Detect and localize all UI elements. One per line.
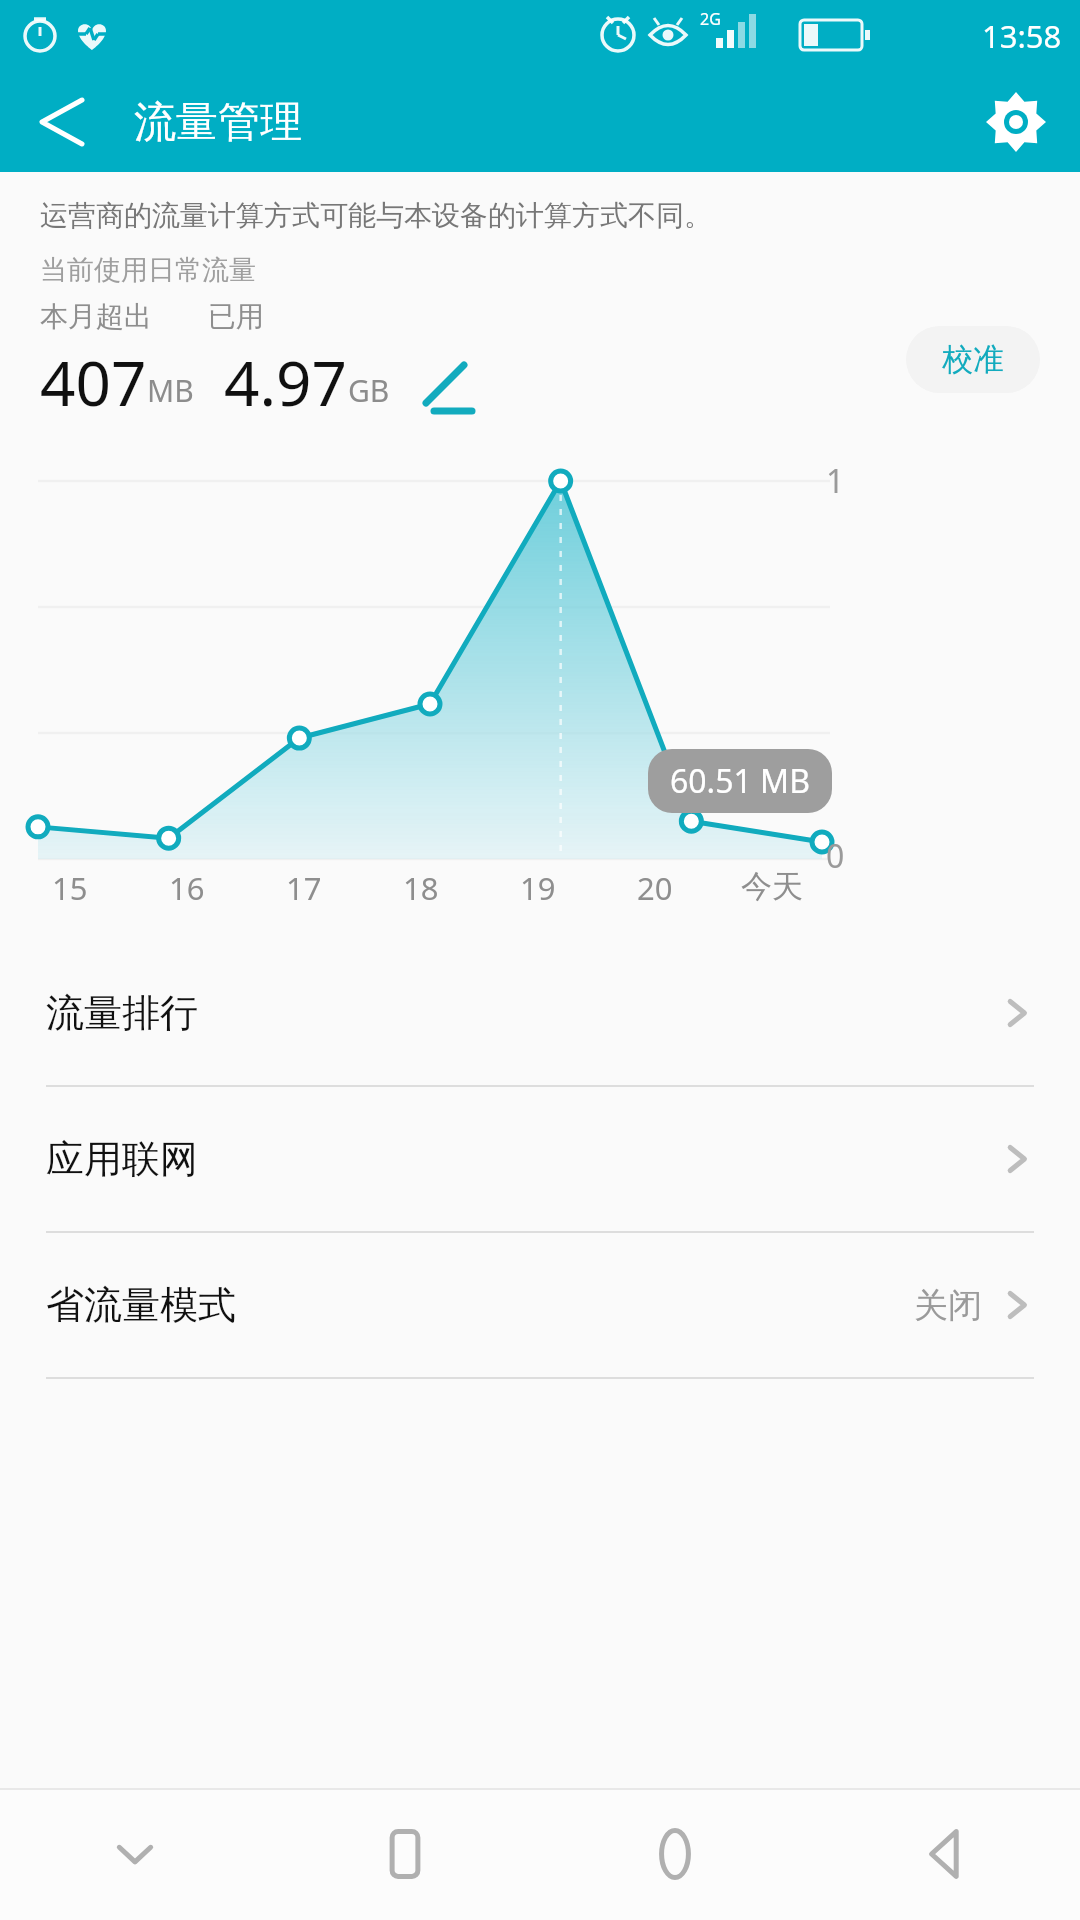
staticText: 407 <box>40 340 147 419</box>
button[interactable]: Home <box>540 1788 810 1920</box>
staticText: 4.97 <box>224 340 348 419</box>
staticText: 19 <box>520 867 556 909</box>
staticText: 校准 <box>942 340 1004 379</box>
button[interactable]: 流量排行 <box>0 941 1080 1085</box>
staticText: 省流量模式 <box>46 1281 236 1329</box>
button[interactable]: Recents <box>270 1788 540 1920</box>
staticText: 已用 <box>208 299 264 334</box>
staticText: 流量排行 <box>46 989 198 1037</box>
button[interactable]: Settings <box>978 84 1054 160</box>
staticText: 流量管理 <box>134 96 302 149</box>
staticText: GB <box>348 370 390 411</box>
button[interactable]: 应用联网 <box>0 1087 1080 1231</box>
staticText: 关闭 <box>914 1284 982 1327</box>
staticText: 18 <box>403 867 439 909</box>
button[interactable]: 校准 <box>906 326 1040 393</box>
staticText: 17 <box>286 867 322 909</box>
staticText: 运营商的流量计算方式可能与本设备的计算方式不同。 <box>40 198 712 233</box>
staticText: 16 <box>169 867 205 909</box>
staticText: 60.51 MB <box>670 759 810 803</box>
button[interactable]: Hide keyboard <box>0 1788 270 1920</box>
staticText: 15 <box>52 867 88 909</box>
button[interactable]: Back <box>24 86 96 158</box>
staticText: 本月超出 <box>40 299 152 334</box>
staticText: 13:58 <box>982 15 1062 57</box>
button[interactable]: 省流量模式 <box>0 1233 1080 1377</box>
button[interactable]: Edit <box>412 349 482 419</box>
staticText: 当前使用日常流量 <box>40 253 256 287</box>
staticText: 20 <box>637 867 673 909</box>
button[interactable]: Back <box>810 1788 1080 1920</box>
staticText: MB <box>147 370 194 411</box>
staticText: 2G <box>700 8 721 30</box>
staticText: 今天 <box>741 867 803 906</box>
staticText: 0 <box>826 834 845 878</box>
staticText: 1 <box>826 459 845 503</box>
staticText: 应用联网 <box>46 1135 198 1183</box>
